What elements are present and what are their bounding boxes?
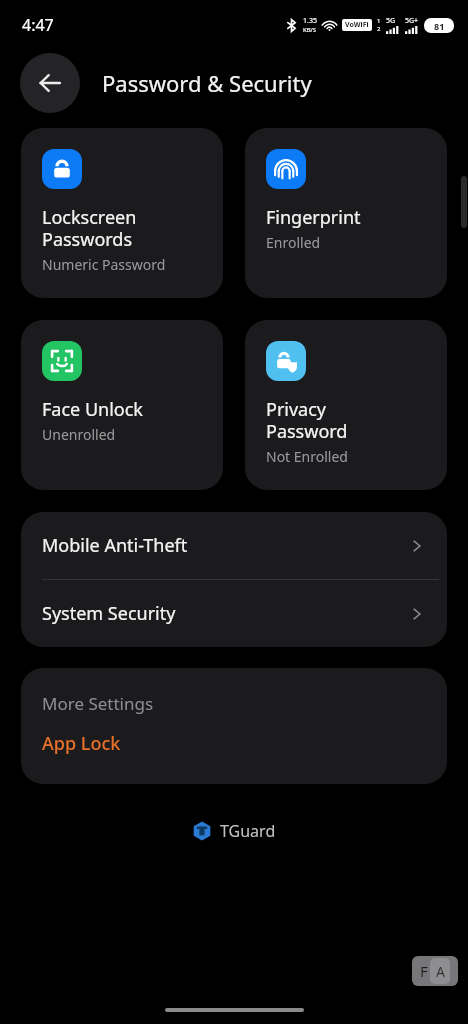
staticText: VoWiFi [345, 20, 369, 30]
button[interactable]: Mobile Anti-Theft [21, 512, 447, 579]
staticText: Lockscreen Passwords [42, 205, 137, 252]
staticText: A [436, 962, 445, 981]
button[interactable]: System Security [21, 580, 447, 647]
staticText: 81 [434, 20, 445, 32]
staticText: 5G [386, 16, 396, 26]
button[interactable]: Face Unlock [21, 320, 223, 490]
staticText: Fingerprint [266, 205, 361, 230]
staticText: Unenrolled [42, 425, 116, 444]
staticText: Numeric Password [42, 255, 166, 274]
button[interactable]: Fingerprint [245, 128, 447, 298]
staticText: TGuard [220, 820, 276, 842]
staticText: Not Enrolled [266, 447, 348, 466]
staticText: Enrolled [266, 233, 321, 252]
staticText: Face Unlock [42, 397, 143, 422]
button[interactable]: Floating assistant [412, 956, 458, 986]
button[interactable]: Lockscreen Passwords [21, 128, 223, 298]
staticText: 1 [377, 17, 381, 25]
staticText: Password & Security [102, 68, 312, 98]
staticText: Privacy Password [266, 397, 348, 444]
staticText: F [420, 961, 428, 981]
staticText: System Security [42, 601, 409, 626]
staticText: 5G+ [405, 16, 419, 26]
staticText: App Lock [42, 731, 121, 756]
staticText: 4:47 [22, 14, 54, 36]
staticText: Mobile Anti-Theft [42, 533, 409, 558]
button[interactable]: Privacy Password [245, 320, 447, 490]
staticText: More Settings [42, 692, 154, 715]
button[interactable]: Back [20, 53, 80, 113]
staticText: KB/S [303, 26, 317, 34]
staticText: 1.35 [303, 16, 317, 26]
staticText: 2 [377, 25, 381, 33]
button[interactable]: App Lock [21, 729, 447, 758]
